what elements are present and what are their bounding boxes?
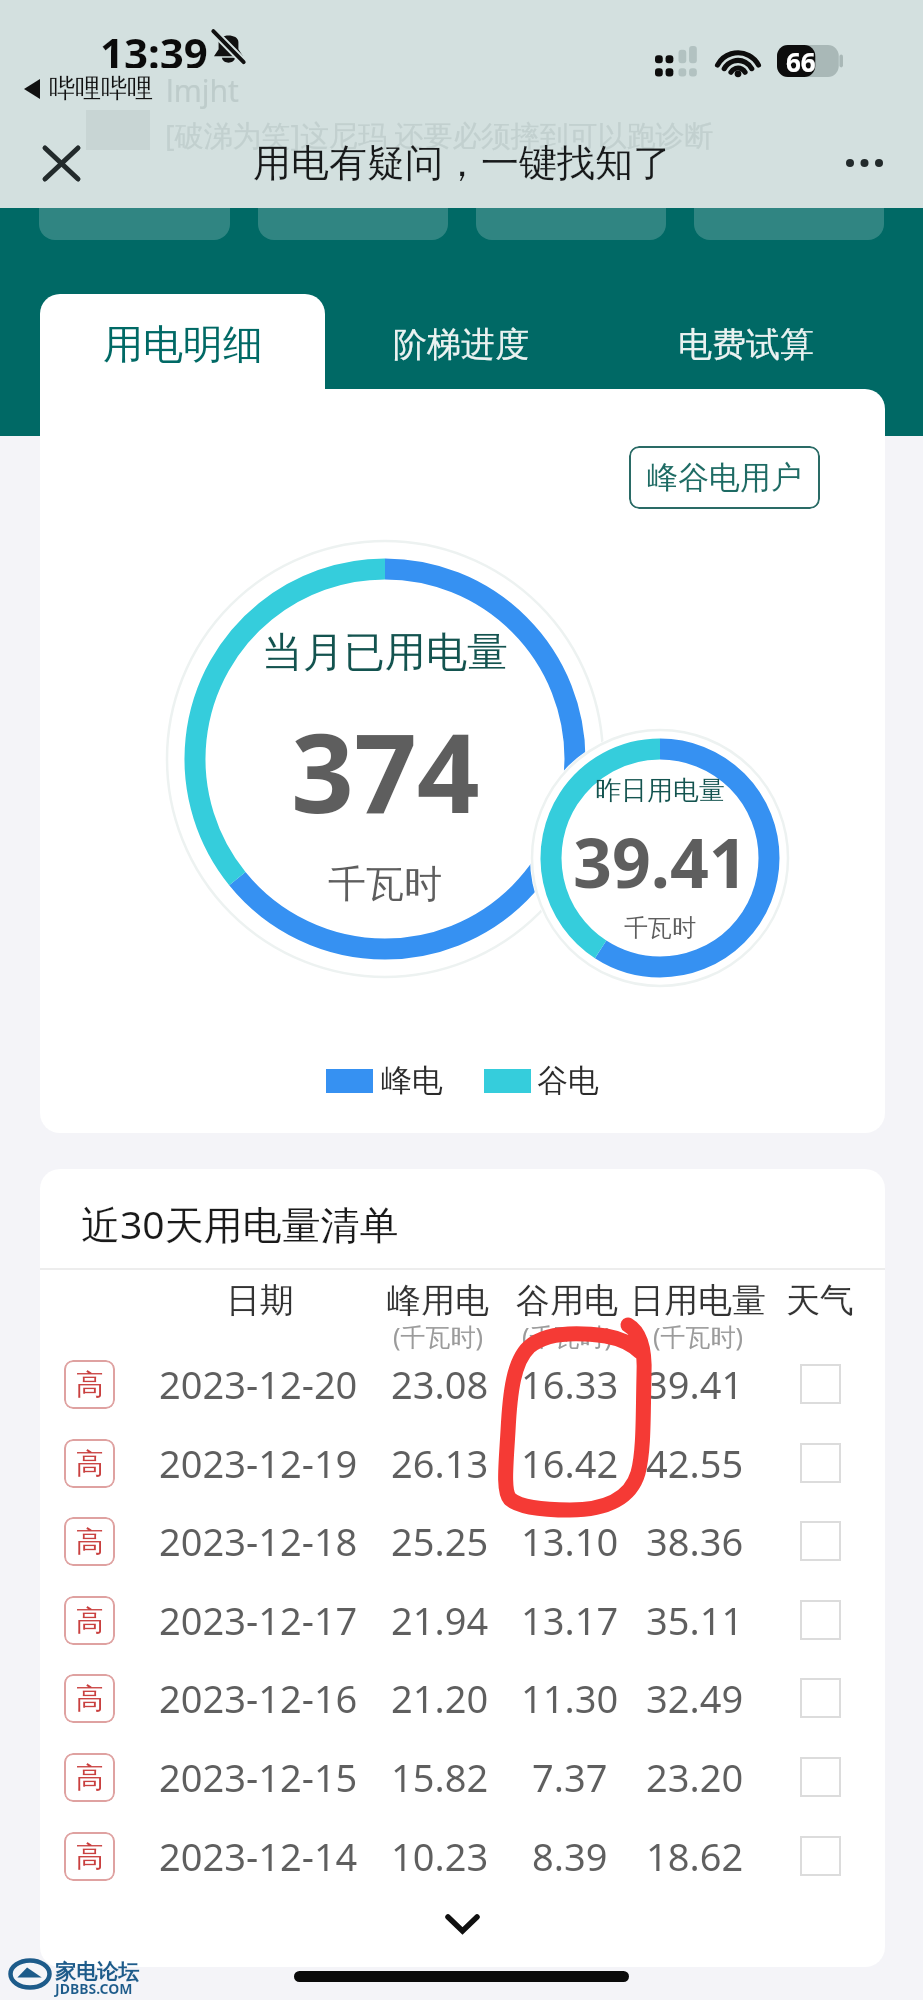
staticText: 峰用电 — [387, 1279, 489, 1322]
staticText: 家电论坛 — [55, 1959, 139, 1985]
staticText: 高 — [76, 1760, 104, 1795]
button[interactable]: 高 — [40, 1424, 885, 1502]
staticText: 千瓦时 — [624, 913, 696, 943]
staticText: (千瓦时) — [653, 1319, 744, 1353]
staticText: 2023-12-20 — [159, 1358, 358, 1410]
staticText: 13.17 — [521, 1594, 619, 1646]
staticText: 高 — [76, 1367, 104, 1402]
button[interactable]: 阶梯进度 — [370, 300, 552, 388]
staticText: 高 — [76, 1446, 104, 1481]
button[interactable]: Quick action — [258, 208, 448, 240]
staticText: 15.82 — [391, 1751, 489, 1803]
staticText: 高 — [76, 1603, 104, 1638]
staticText: 7.37 — [532, 1751, 608, 1803]
button[interactable]: Quick action — [476, 208, 666, 240]
staticText: 42.55 — [646, 1437, 744, 1489]
staticText: 用电明细 — [103, 319, 263, 369]
staticText: 16.42 — [521, 1437, 619, 1489]
staticText: 25.25 — [391, 1515, 489, 1567]
staticText: JDBBS.COM — [55, 1979, 133, 1998]
staticText: 电费试算 — [678, 323, 814, 366]
staticText: 13.10 — [521, 1515, 619, 1567]
staticText: 阶梯进度 — [393, 323, 529, 366]
staticText: 峰电 — [381, 1061, 443, 1100]
button[interactable]: 电费试算 — [655, 300, 837, 388]
staticText: (千瓦时) — [522, 1319, 613, 1353]
staticText: 16.33 — [521, 1358, 619, 1410]
staticText: 2023-12-19 — [159, 1437, 358, 1489]
staticText: lmjht — [166, 70, 239, 111]
staticText: 千瓦时 — [328, 860, 442, 908]
staticText: [破涕为笑]这尼玛 还要必须摔到可以跑诊断 — [165, 115, 714, 155]
staticText: 18.62 — [646, 1830, 744, 1882]
staticText: 21.94 — [391, 1594, 489, 1646]
staticText: 2023-12-18 — [159, 1515, 358, 1567]
staticText: 谷用电 — [516, 1279, 618, 1322]
button[interactable]: 高 — [40, 1738, 885, 1816]
button[interactable]: 高 — [40, 1659, 885, 1737]
staticText: 2023-12-15 — [159, 1751, 358, 1803]
staticText: 高 — [76, 1524, 104, 1559]
staticText: 38.36 — [646, 1515, 744, 1567]
staticText: 近30天用电量清单 — [81, 1197, 399, 1250]
button[interactable]: Close — [26, 128, 96, 198]
staticText: 26.13 — [391, 1437, 489, 1489]
staticText: 谷电 — [537, 1061, 599, 1100]
button[interactable]: 高 — [40, 1502, 885, 1580]
staticText: 23.08 — [391, 1358, 489, 1410]
staticText: 天气 — [786, 1279, 854, 1322]
staticText: 2023-12-16 — [159, 1672, 358, 1724]
button[interactable]: 高 — [40, 1581, 885, 1659]
staticText: 23.20 — [646, 1751, 744, 1803]
staticText: 2023-12-17 — [159, 1594, 358, 1646]
staticText: 用电有疑问，一键找知了 — [253, 139, 671, 187]
staticText: 10.23 — [391, 1830, 489, 1882]
staticText: 峰谷电用户 — [647, 458, 802, 497]
staticText: 32.49 — [646, 1672, 744, 1724]
staticText: 35.11 — [646, 1594, 744, 1646]
staticText: 当月已用电量 — [262, 627, 508, 679]
staticText: 11.30 — [521, 1672, 619, 1724]
staticText: 66 — [786, 44, 816, 76]
staticText: (千瓦时) — [393, 1319, 484, 1353]
button[interactable]: 用电明细 — [40, 294, 325, 394]
staticText: 昨日用电量 — [595, 774, 725, 807]
staticText: 13:39 — [100, 24, 208, 68]
button[interactable]: Quick action — [694, 208, 884, 240]
staticText: 日期 — [226, 1279, 294, 1322]
staticText: 39.41 — [646, 1358, 744, 1410]
staticText: 高 — [76, 1839, 104, 1874]
staticText: 高 — [76, 1681, 104, 1716]
staticText: 日用电量 — [630, 1279, 766, 1322]
button[interactable]: Quick action — [39, 208, 230, 240]
staticText: 8.39 — [532, 1830, 608, 1882]
button[interactable]: Show more — [40, 1881, 885, 1967]
staticText: 2023-12-14 — [159, 1830, 358, 1882]
staticText: 374 — [291, 695, 480, 845]
staticText: 哔哩哔哩 — [49, 72, 153, 105]
staticText: 21.20 — [391, 1672, 489, 1724]
button[interactable]: 高 — [40, 1345, 885, 1423]
button[interactable]: 高 — [40, 1817, 885, 1895]
staticText: 39.41 — [573, 815, 748, 908]
button[interactable]: 峰谷电用户 — [629, 446, 820, 509]
button[interactable]: More options — [829, 128, 899, 198]
